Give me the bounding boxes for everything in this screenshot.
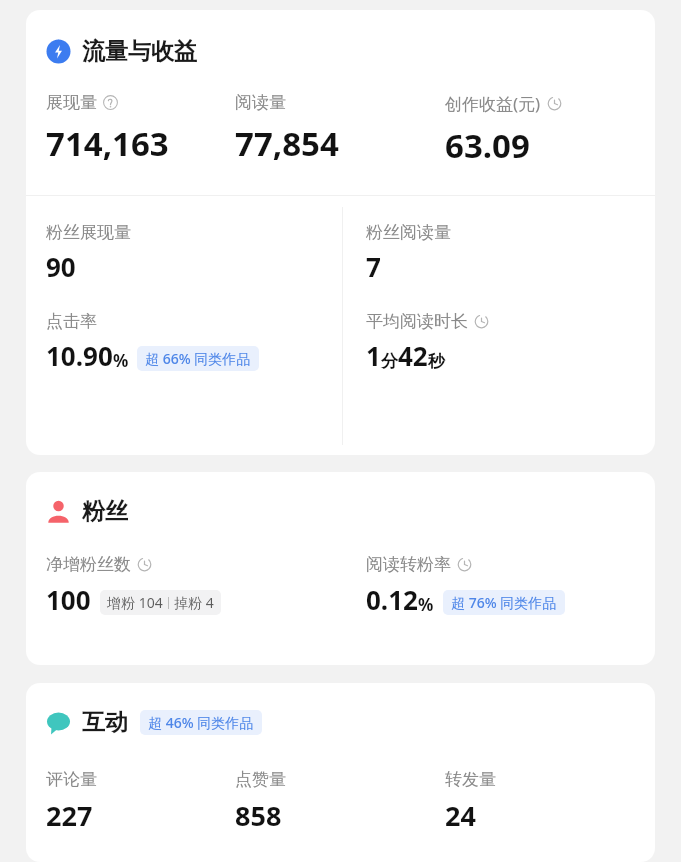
staticText: 10.90 [46,338,113,373]
staticText: 展现量 [46,92,97,113]
staticText: 714,163 [46,121,169,166]
staticText: 平均阅读时长 [366,311,468,332]
staticText: 阅读转粉率 [366,554,451,575]
staticText: 增粉 104 [107,593,163,612]
button[interactable]: 评论量 [46,769,235,834]
button[interactable]: 阅读量 [235,92,445,166]
button[interactable]: 粉丝阅读量 [366,222,451,284]
button[interactable]: 转发量 [445,769,655,834]
staticText: 粉丝 [82,497,128,526]
staticText: 1 [366,338,381,373]
staticText: 创作收益(元) [445,92,541,115]
button[interactable]: Traffic and revenue [46,37,197,66]
other: Fans [46,499,71,524]
staticText: 0.12 [366,582,418,617]
staticText: 净增粉丝数 [46,554,131,575]
other: Interactions [46,710,71,735]
staticText: 转发量 [445,769,496,790]
staticText: 42 [398,338,428,373]
staticText: 点击率 [46,311,97,332]
button[interactable]: Interactions [46,708,262,737]
staticText: % [113,349,129,372]
staticText: 77,854 [235,121,339,166]
staticText: 超 76% 同类作品 [451,593,557,612]
staticText: 227 [46,797,93,834]
button[interactable]: 点击率 [46,311,259,373]
staticText: 63.09 [445,123,530,168]
button[interactable]: Interactions [26,683,655,862]
staticText: 评论量 [46,769,97,790]
staticText: 流量与收益 [82,37,197,66]
button[interactable]: 超 66% 同类作品 [137,346,259,371]
staticText: 超 46% 同类作品 [148,713,254,732]
staticText: 粉丝阅读量 [366,222,451,243]
other: Traffic and revenue [46,39,71,64]
staticText: 7 [366,249,381,284]
staticText: 超 66% 同类作品 [145,349,251,368]
staticText: 互动 [82,708,128,737]
staticText: 掉粉 4 [174,593,214,612]
button[interactable]: Fans [26,472,655,665]
staticText: 24 [445,797,476,834]
staticText: 100 [46,582,91,617]
staticText: 点赞量 [235,769,286,790]
staticText: 阅读量 [235,92,286,113]
button[interactable]: Traffic and revenue [26,10,655,455]
button[interactable]: 超 46% 同类作品 [140,710,262,735]
button[interactable]: 展现量 [46,92,235,166]
button[interactable]: 粉丝展现量 [46,222,131,284]
staticText: 秒 [428,351,445,372]
button[interactable]: Fans [46,497,128,526]
button[interactable]: 点赞量 [235,769,445,834]
staticText: 90 [46,249,76,284]
button[interactable]: 超 76% 同类作品 [443,590,565,615]
button[interactable]: 平均阅读时长 [366,311,489,373]
staticText: 分 [381,351,398,372]
staticText: 858 [235,797,282,834]
staticText: 粉丝展现量 [46,222,131,243]
button[interactable]: 创作收益(元) [445,92,655,168]
staticText: % [418,593,434,616]
